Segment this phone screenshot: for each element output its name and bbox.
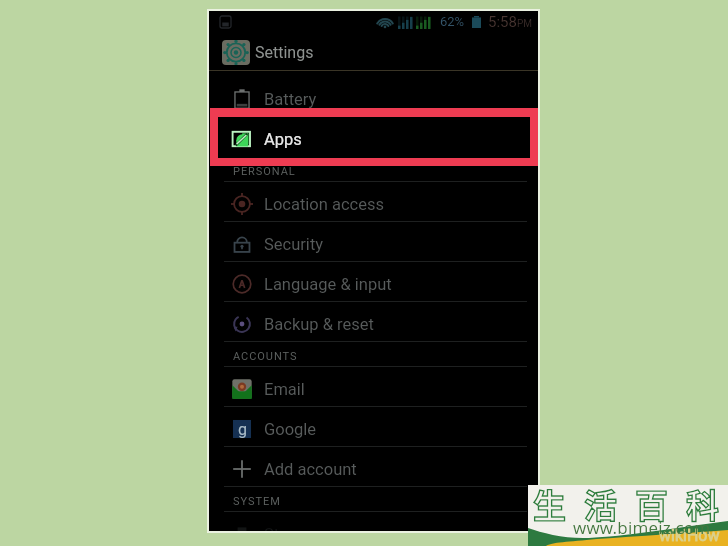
button[interactable]: Email xyxy=(209,367,538,407)
staticText: www.bimeiz.com xyxy=(573,516,711,539)
staticText: ACCOUNTS xyxy=(233,350,298,363)
staticText: 5:58 xyxy=(488,13,517,31)
staticText: SYSTEM xyxy=(233,495,281,508)
staticText: PM xyxy=(517,18,533,30)
button[interactable]: Security xyxy=(209,222,538,262)
button[interactable]: Language & input xyxy=(209,262,538,302)
staticText: wikiHow xyxy=(659,526,720,545)
button[interactable]: g xyxy=(209,407,538,447)
staticText: 百 xyxy=(635,480,668,528)
staticText: Security xyxy=(264,235,324,254)
staticText: 生 xyxy=(533,480,566,528)
staticText: PERSONAL xyxy=(233,165,296,178)
staticText: Battery xyxy=(264,90,317,109)
staticText: Apps xyxy=(264,130,302,149)
staticText: Add account xyxy=(264,460,357,479)
staticText: Backup & reset xyxy=(264,315,374,334)
button[interactable]: Battery xyxy=(209,77,538,117)
staticText: Email xyxy=(264,380,305,399)
other: Apps xyxy=(209,117,538,157)
staticText: 活 xyxy=(584,480,617,528)
button[interactable] xyxy=(210,108,538,166)
staticText: Settings xyxy=(255,43,314,62)
button[interactable]: Storage xyxy=(209,512,538,531)
staticText: 科 xyxy=(686,480,719,528)
staticText: Apps xyxy=(264,130,302,149)
staticText: Storage xyxy=(264,525,321,531)
staticText: 62% xyxy=(440,14,465,29)
button[interactable]: Add account xyxy=(209,447,538,487)
staticText: Google xyxy=(264,420,317,439)
button[interactable]: Apps xyxy=(209,117,538,157)
button[interactable]: Location access xyxy=(209,182,538,222)
staticText: Location access xyxy=(264,195,384,214)
staticText: Language & input xyxy=(264,275,392,294)
button[interactable]: Backup & reset xyxy=(209,302,538,342)
staticText: g xyxy=(238,420,247,439)
